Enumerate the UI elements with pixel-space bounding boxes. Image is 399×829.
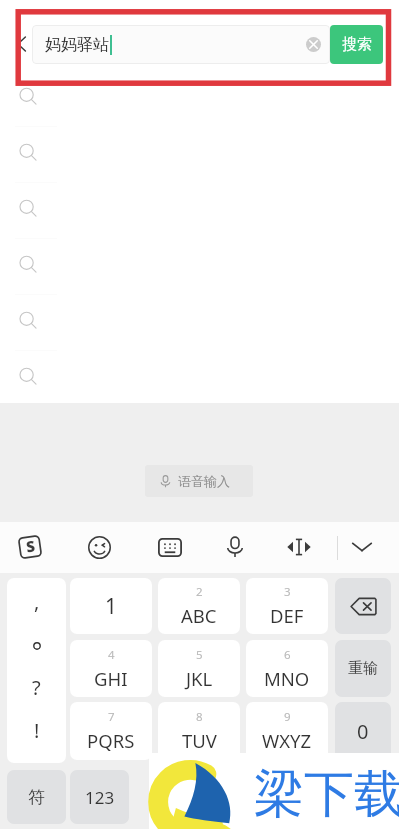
staticText: !: [34, 717, 40, 741]
button[interactable]: Keyboard: [148, 525, 192, 569]
button[interactable]: 1: [70, 578, 152, 634]
button[interactable]: 8: [158, 702, 240, 760]
staticText: WXYZ: [262, 728, 312, 753]
staticText: 5: [196, 647, 203, 663]
staticText: 搜索: [342, 35, 372, 54]
staticText: ?: [32, 674, 41, 698]
staticText: 符: [28, 787, 45, 808]
staticText: TUV: [182, 728, 217, 753]
staticText: PQRS: [87, 728, 135, 753]
button[interactable]: 妈妈驿站: [32, 25, 330, 64]
staticText: 8: [196, 709, 203, 725]
staticText: DEF: [270, 603, 304, 628]
button[interactable]: Hide keyboard: [340, 525, 384, 569]
button[interactable]: Backspace: [335, 578, 391, 634]
button[interactable]: 9: [246, 702, 328, 760]
staticText: MNO: [264, 666, 310, 691]
button[interactable]: 语音输入: [145, 465, 253, 497]
button[interactable]: Emoji: [77, 525, 121, 569]
staticText: S: [25, 535, 36, 557]
button[interactable]: 6: [246, 640, 328, 697]
button[interactable]: 123: [70, 770, 129, 824]
button[interactable]: 7: [70, 702, 152, 760]
button[interactable]: Back: [8, 26, 34, 62]
button[interactable]: 符: [7, 770, 66, 824]
button[interactable]: 5: [158, 640, 240, 697]
button[interactable]: Suggestion: [0, 70, 399, 126]
button[interactable]: Clear text: [294, 25, 330, 63]
button[interactable]: ,: [7, 578, 66, 763]
button[interactable]: Input method: [8, 525, 52, 569]
button[interactable]: 3: [246, 578, 328, 634]
staticText: GHI: [94, 666, 128, 691]
button[interactable]: Suggestion: [0, 350, 399, 406]
button[interactable]: Move cursor: [277, 525, 321, 569]
staticText: 梁下载: [254, 763, 399, 826]
staticText: ABC: [181, 603, 217, 628]
staticText: 7: [108, 709, 115, 725]
button[interactable]: 重输: [335, 640, 391, 697]
button[interactable]: 0: [335, 702, 391, 760]
staticText: 0: [357, 718, 369, 745]
staticText: 1: [105, 592, 118, 621]
staticText: 语音输入: [178, 473, 230, 489]
staticText: 重输: [348, 659, 378, 678]
button[interactable]: 搜索: [330, 25, 383, 64]
button[interactable]: Voice input: [213, 525, 257, 569]
button[interactable]: 4: [70, 640, 152, 697]
staticText: 6: [284, 647, 291, 663]
staticText: JKL: [186, 666, 213, 691]
staticText: 3: [284, 584, 291, 600]
staticText: ,: [34, 588, 40, 612]
staticText: 4: [108, 647, 115, 663]
button[interactable]: 2: [158, 578, 240, 634]
staticText: 2: [196, 584, 203, 600]
staticText: 9: [284, 709, 291, 725]
staticText: 123: [85, 786, 115, 809]
staticText: 妈妈驿站: [45, 35, 109, 55]
